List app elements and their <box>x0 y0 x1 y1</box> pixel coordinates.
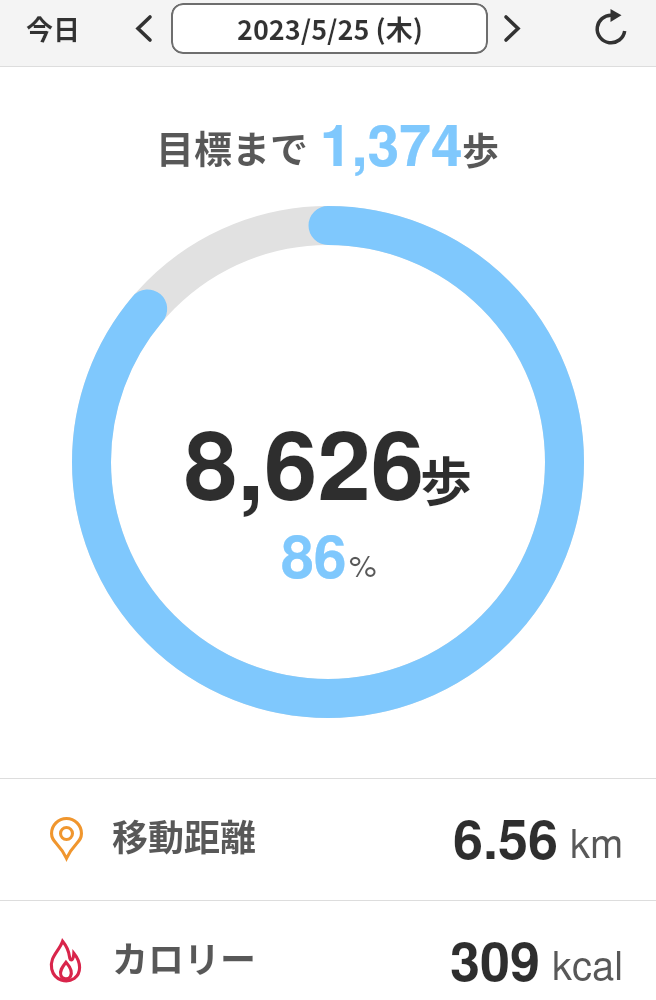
button[interactable]: Refresh <box>583 0 639 57</box>
button[interactable]: 移動距離 <box>0 779 656 900</box>
staticText: 86 <box>281 512 347 596</box>
staticText: 歩 <box>462 122 499 176</box>
staticText: 歩 <box>420 441 473 516</box>
staticText: 8,626 <box>184 392 425 529</box>
button[interactable]: Previous day <box>120 0 168 57</box>
button[interactable]: Next day <box>488 0 536 57</box>
staticText: 移動距離 <box>112 809 257 861</box>
button[interactable]: カロリー <box>0 901 656 1000</box>
staticText: 6.56 <box>453 798 559 875</box>
staticText: 1,374 <box>320 102 463 184</box>
staticText: kcal <box>552 934 624 991</box>
staticText: 今日 <box>26 9 80 48</box>
staticText: 309 <box>450 920 541 997</box>
staticText: 2023/5/25 (木) <box>237 9 423 48</box>
button[interactable]: 2023/5/25 (木) <box>171 3 488 54</box>
staticText: カロリー <box>112 931 257 983</box>
staticText: km <box>570 812 624 869</box>
staticText: 目標まで <box>156 119 309 174</box>
button[interactable]: 今日 <box>14 0 92 57</box>
staticText: % <box>349 541 377 585</box>
